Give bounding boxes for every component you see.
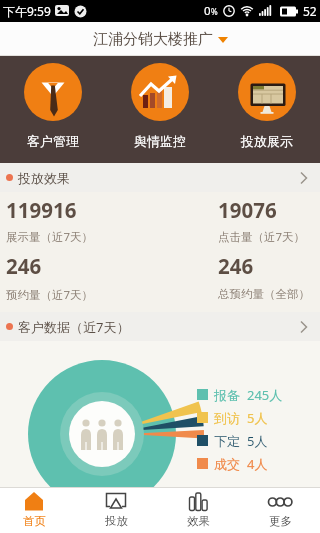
staticText: 5人: [247, 409, 268, 427]
staticText: 报备: [214, 387, 240, 403]
staticText: 首页: [23, 514, 46, 528]
button[interactable]: 江浦分销大楼推广: [93, 30, 228, 49]
staticText: 舆情监控: [134, 133, 186, 149]
staticText: %: [211, 6, 218, 17]
staticText: 投放效果: [18, 170, 70, 186]
staticText: 0: [204, 3, 211, 19]
staticText: 预约量（近7天）: [6, 287, 94, 303]
button[interactable]: 效果: [164, 488, 232, 533]
staticText: 投放: [105, 514, 128, 528]
staticText: 成交: [214, 456, 240, 472]
staticText: 下午9:59: [3, 3, 51, 19]
staticText: 效果: [187, 514, 210, 528]
button[interactable]: 客户数据（近7天）: [0, 312, 320, 341]
staticText: 客户数据（近7天）: [18, 318, 130, 336]
staticText: 5人: [247, 432, 268, 450]
staticText: 展示量（近7天）: [6, 229, 94, 245]
staticText: 19076: [218, 196, 277, 224]
staticText: 52: [303, 3, 317, 19]
staticText: 246: [6, 252, 42, 280]
button[interactable]: 首页: [0, 488, 68, 533]
staticText: 4人: [247, 455, 268, 473]
button[interactable]: 投放: [82, 488, 150, 533]
staticText: 下定: [214, 433, 240, 449]
button[interactable]: 客户管理: [0, 56, 106, 163]
staticText: 119916: [6, 196, 77, 224]
button[interactable]: 投放效果: [0, 163, 320, 192]
staticText: 245人: [247, 386, 283, 404]
staticText: 点击量（近7天）: [218, 229, 306, 245]
staticText: 总预约量（全部）: [218, 287, 310, 301]
staticText: 246: [218, 252, 254, 280]
staticText: 到访: [214, 410, 240, 426]
button[interactable]: 投放展示: [213, 56, 320, 163]
staticText: 更多: [269, 514, 292, 528]
staticText: 客户管理: [27, 133, 79, 149]
staticText: 投放展示: [241, 133, 293, 149]
button[interactable]: 舆情监控: [106, 56, 213, 163]
button[interactable]: 更多: [246, 488, 314, 533]
staticText: 江浦分销大楼推广: [93, 30, 213, 49]
